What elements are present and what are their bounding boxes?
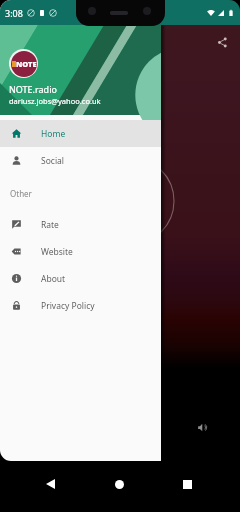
button[interactable]: About [0, 265, 161, 292]
button[interactable]: Social [0, 147, 161, 174]
staticText: Website [41, 246, 73, 258]
staticText: Privacy Policy [41, 300, 95, 312]
staticText: Rate [41, 219, 59, 231]
button[interactable]: Volume [193, 418, 212, 437]
button[interactable]: Home [0, 120, 161, 147]
staticText: 3:08 [5, 7, 23, 19]
button[interactable]: Share [213, 33, 232, 52]
staticText: Social [41, 155, 65, 167]
button[interactable]: Recents [172, 469, 202, 499]
staticText: About [41, 273, 66, 285]
button[interactable]: Website [0, 238, 161, 265]
staticText: Home [41, 128, 66, 140]
staticText: dariusz.jobs@yahoo.co.uk [9, 96, 101, 106]
staticText: NOTE.radio [9, 83, 57, 95]
button[interactable]: Home [104, 469, 134, 499]
button[interactable]: Back [35, 469, 65, 499]
staticText: NOTE [16, 59, 37, 69]
button[interactable]: Privacy Policy [0, 292, 161, 319]
staticText: Other [10, 188, 32, 199]
button[interactable]: Rate [0, 211, 161, 238]
